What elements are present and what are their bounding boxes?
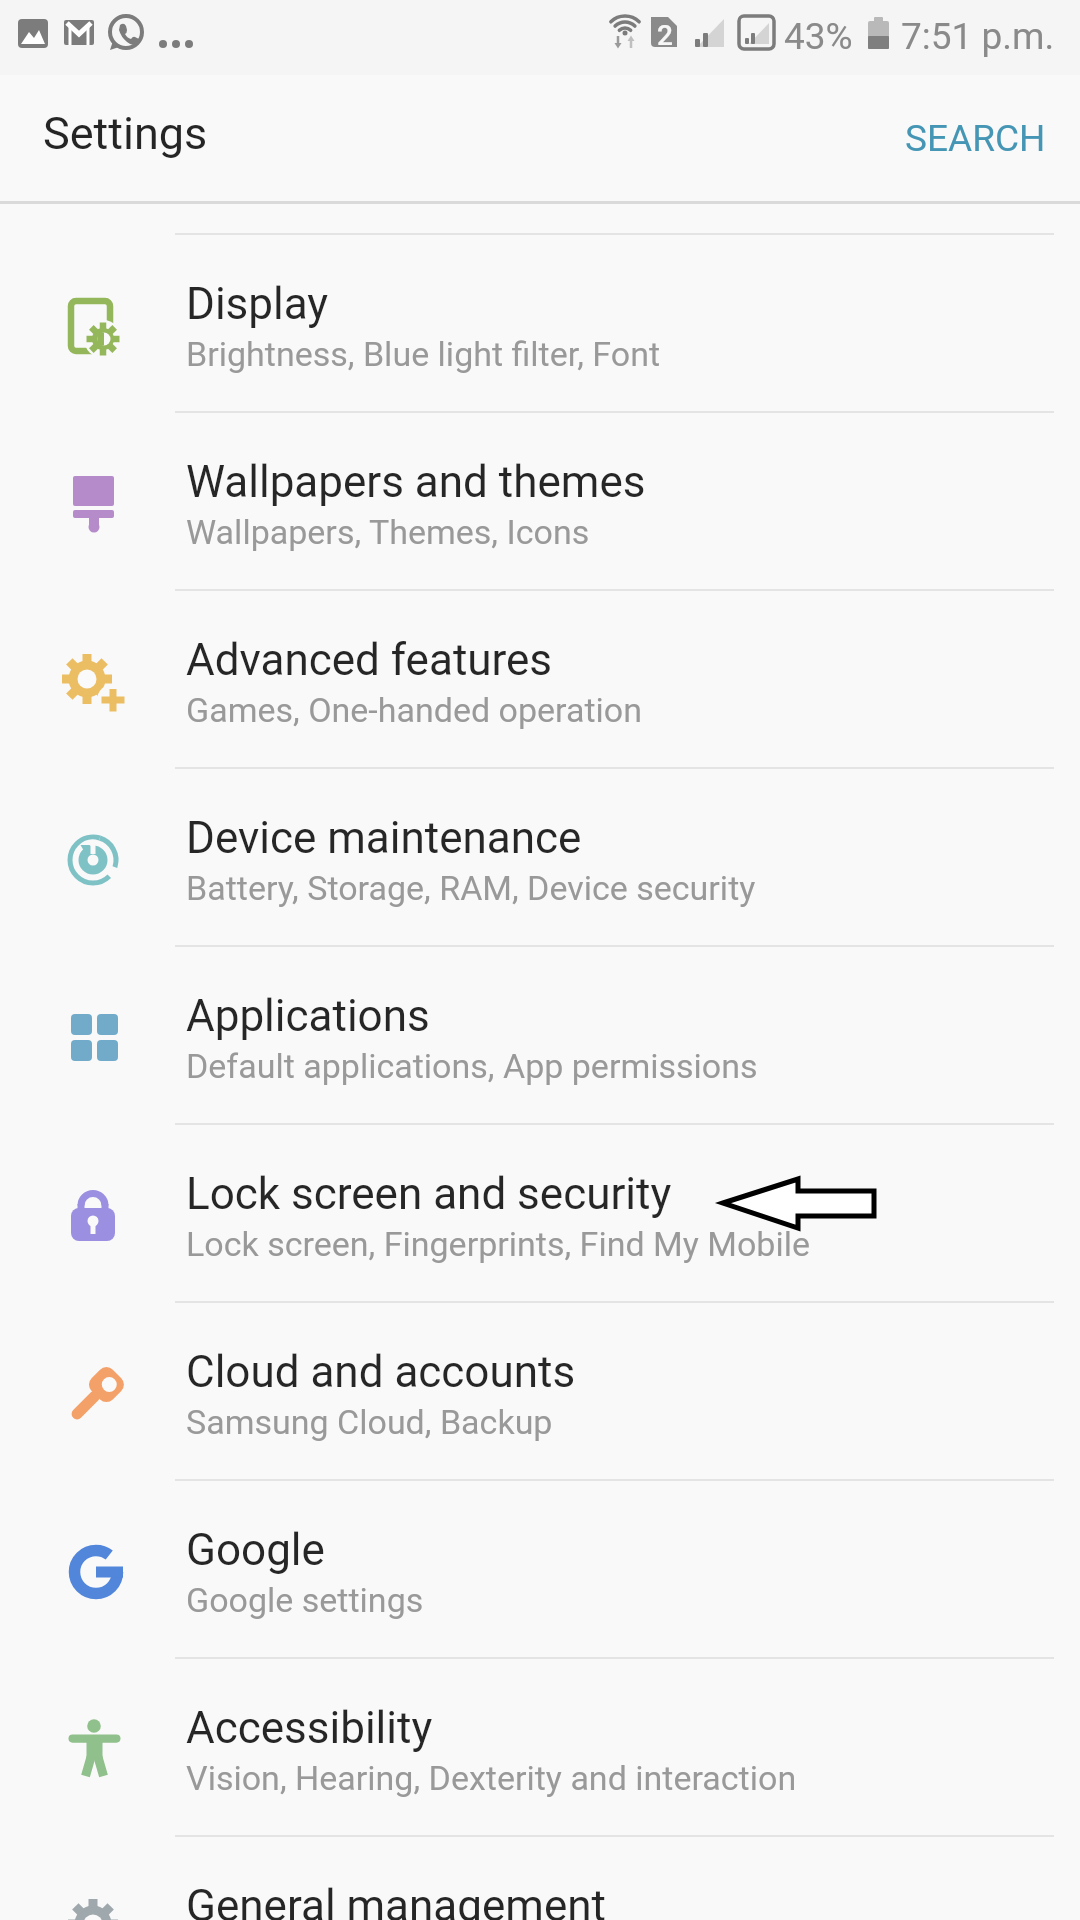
staticText: Google [186,1524,325,1576]
button[interactable]: Applications [0,947,1080,1123]
staticText: Advanced features [186,634,553,686]
staticText: Device maintenance [186,812,582,864]
button[interactable]: Google [0,1481,1080,1657]
button[interactable]: Lock screen and security [0,1125,1080,1301]
button[interactable]: Display [0,235,1080,411]
staticText: Lock screen and security [186,1168,672,1220]
button[interactable]: Accessibility [0,1659,1080,1835]
button[interactable]: General management [0,1837,1080,1920]
staticText: Accessibility [186,1702,433,1754]
staticText: Games, One-handed operation [186,690,642,730]
button[interactable]: Wallpapers and themes [0,413,1080,589]
staticText: Lock screen, Fingerprints, Find My Mobil… [186,1224,810,1264]
staticText: 2 [657,19,673,52]
staticText: Cloud and accounts [186,1346,576,1398]
staticText: Brightness, Blue light filter, Font [186,334,661,374]
staticText: General management [186,1880,606,1920]
staticText: Vision, Hearing, Dexterity and interacti… [186,1758,797,1798]
staticText: SEARCH [905,117,1046,160]
staticText: Battery, Storage, RAM, Device security [186,868,756,908]
staticText: Google settings [186,1580,424,1620]
staticText: Wallpapers, Themes, Icons [186,512,590,552]
button[interactable]: Cloud and accounts [0,1303,1080,1479]
staticText: 43% [784,15,853,58]
staticText: Default applications, App permissions [186,1046,758,1086]
staticText: 7:51 p.m. [901,15,1055,58]
button[interactable]: Device maintenance [0,769,1080,945]
button[interactable]: SEARCH [905,117,1046,160]
staticText: Display [186,278,329,330]
staticText: Wallpapers and themes [186,456,646,508]
staticText: Applications [186,990,430,1042]
staticText: Samsung Cloud, Backup [186,1402,553,1442]
staticText: Settings [43,107,208,160]
button[interactable]: Advanced features [0,591,1080,767]
